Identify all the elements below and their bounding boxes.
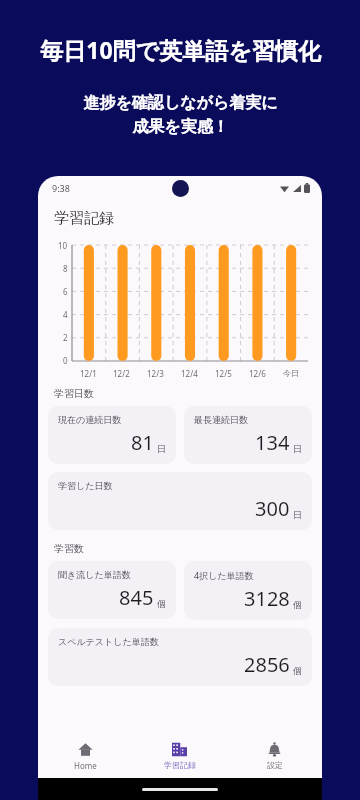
staticText: スペルテストした単語数 [58,636,159,647]
staticText: 現在の連続日数 [58,414,122,425]
button[interactable]: 設定 [227,734,322,778]
staticText: 845 [119,584,154,611]
staticText: 成果を実感！ [132,117,229,137]
staticText: 学習日数 [54,387,94,400]
staticText: 12/2 [113,368,130,379]
staticText: 学習した日数 [58,480,113,491]
staticText: 300 [255,495,290,522]
staticText: 3128 [244,585,290,612]
button[interactable]: 聞き流した単語数 [48,561,176,619]
staticText: 6 [63,286,68,297]
button[interactable]: 最長連続日数 [184,406,312,464]
staticText: 12/3 [147,368,164,379]
staticText: 12/6 [249,368,266,379]
staticText: 学習記録 [54,209,114,228]
staticText: 個 [293,665,302,676]
button[interactable]: 学習した日数 [48,472,312,530]
staticText: 2 [63,332,68,343]
button[interactable]: 4択した単語数 [184,561,312,620]
staticText: 日 [157,443,166,454]
staticText: 今日 [283,368,299,378]
staticText: Home [74,760,97,771]
staticText: 個 [157,598,166,609]
staticText: 日 [293,443,302,454]
button[interactable]: 現在の連続日数 [48,406,176,464]
staticText: 個 [293,599,302,610]
staticText: 10 [58,240,68,251]
other: Home [78,742,93,757]
staticText: 最長連続日数 [194,414,248,425]
staticText: 学習記録 [164,760,196,770]
button[interactable]: Home [38,734,132,778]
staticText: 毎日10問で英単語を習慣化 [40,34,321,65]
staticText: 0 [63,355,68,366]
button[interactable]: 学習記録 [132,734,227,778]
staticText: 日 [293,509,302,520]
other: 設定 [267,742,282,757]
staticText: 4択した単語数 [194,569,254,581]
button[interactable]: スペルテストした単語数 [48,628,312,686]
staticText: 4 [63,309,68,320]
staticText: 134 [255,429,290,456]
staticText: 12/5 [215,368,232,379]
staticText: 9:38 [52,182,70,194]
staticText: 聞き流した単語数 [58,569,131,580]
staticText: 2856 [244,651,290,678]
staticText: 8 [63,263,68,274]
staticText: 12/4 [181,368,198,379]
other: 学習記録 [172,742,187,757]
staticText: 設定 [267,760,283,770]
staticText: 進捗を確認しながら着実に [83,93,278,113]
staticText: 81 [131,429,154,456]
staticText: 12/1 [80,368,97,379]
staticText: 学習数 [54,542,84,555]
